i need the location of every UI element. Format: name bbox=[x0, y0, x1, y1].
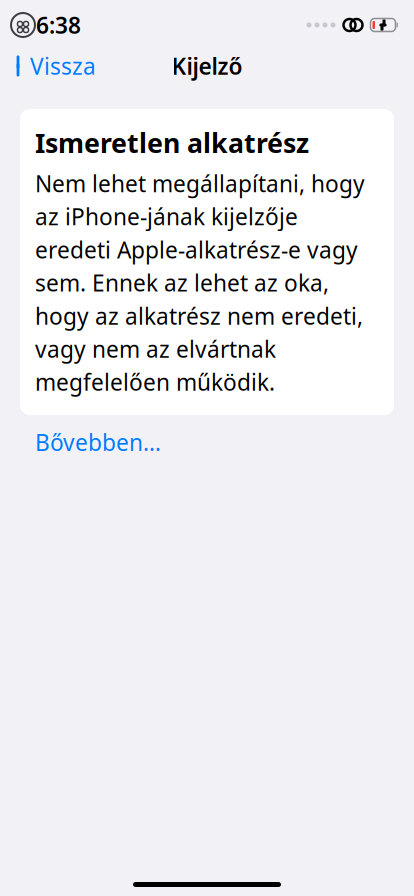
button[interactable]: Vissza bbox=[0, 45, 96, 87]
staticText: Nem lehet megállapítani, hogy az iPhone-… bbox=[35, 168, 365, 397]
button[interactable]: Bővebben… bbox=[0, 415, 196, 463]
staticText: Kijelző bbox=[171, 51, 242, 81]
staticText: Vissza bbox=[30, 51, 96, 81]
staticText: Ismeretlen alkatrész bbox=[35, 125, 309, 160]
staticText: 6:38 bbox=[36, 10, 81, 40]
staticText: Bővebben… bbox=[35, 427, 161, 457]
